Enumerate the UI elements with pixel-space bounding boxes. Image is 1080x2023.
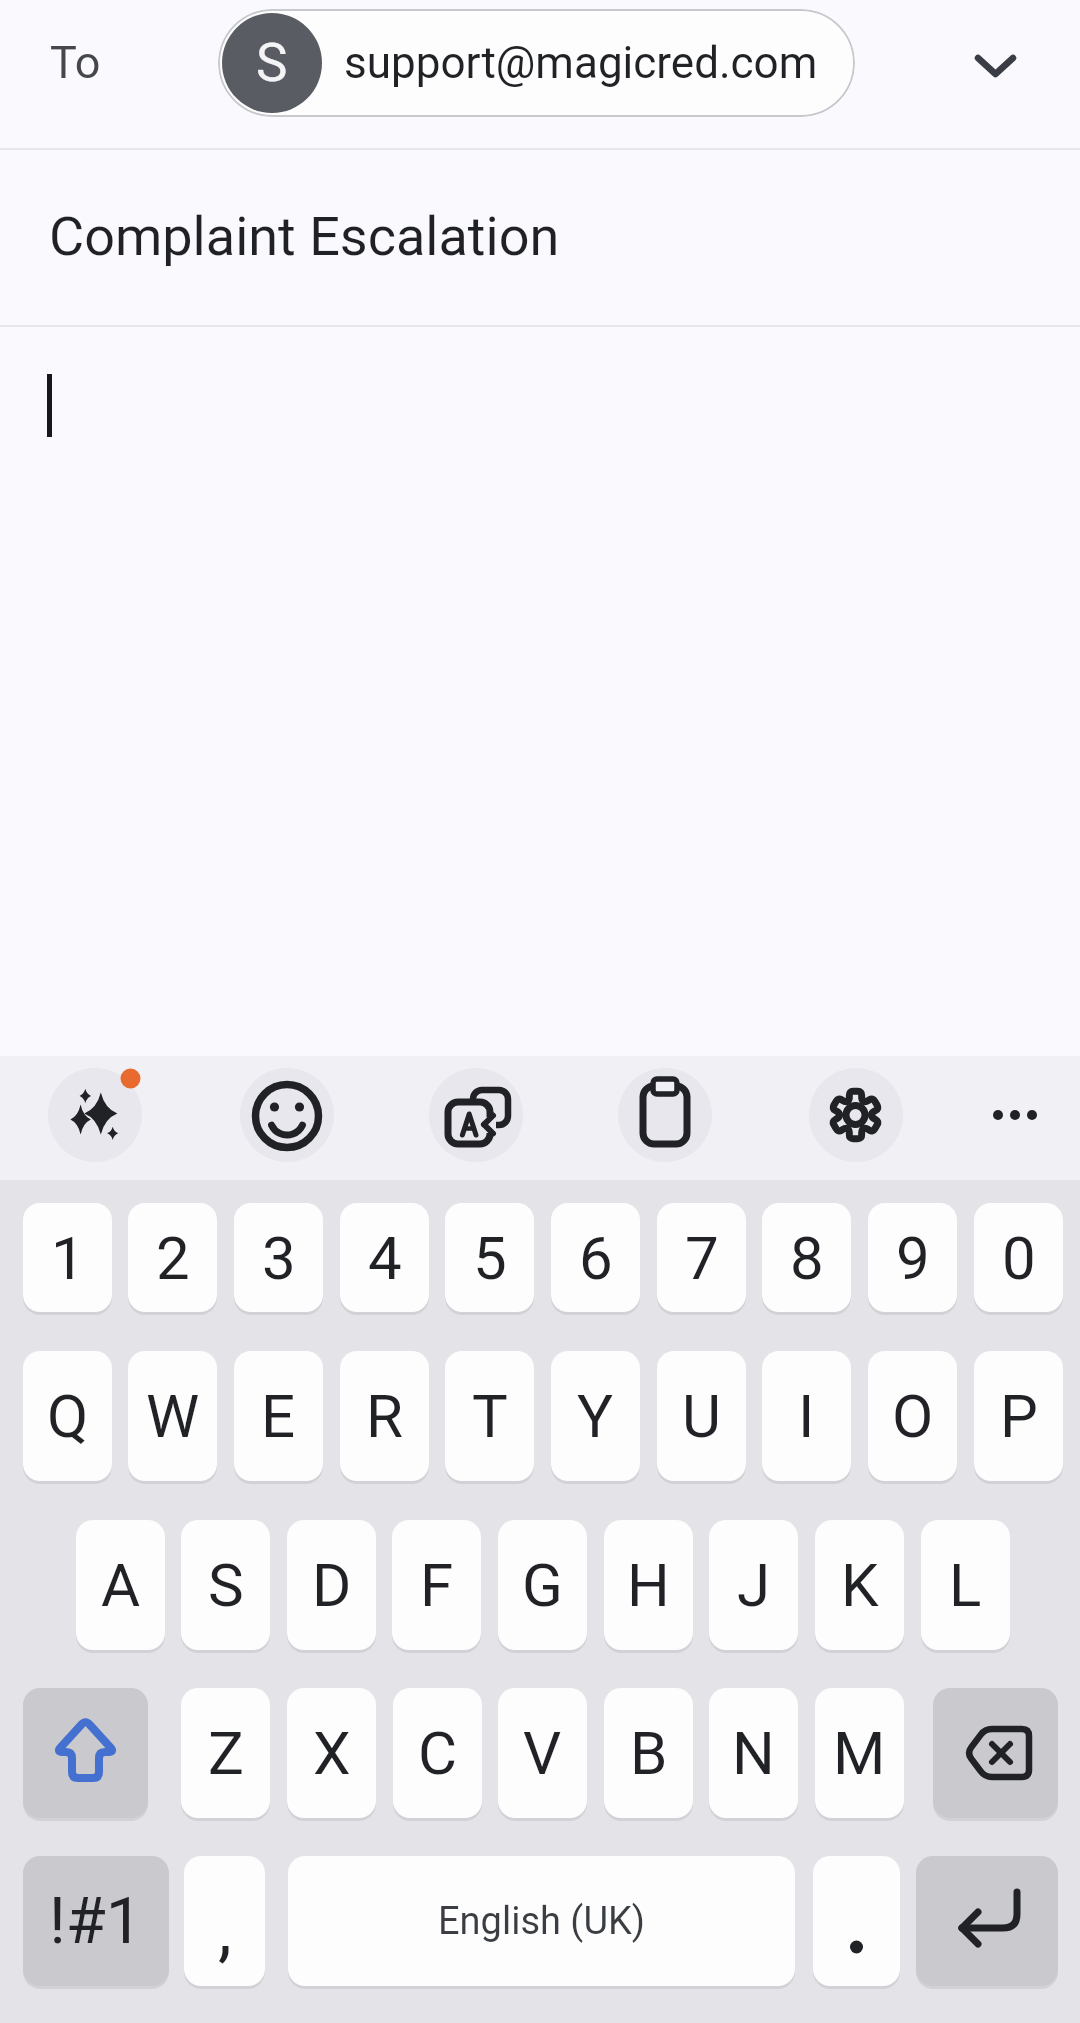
button[interactable]: B — [604, 1688, 693, 1818]
staticText: M — [833, 1718, 886, 1788]
button[interactable]: H — [604, 1520, 693, 1650]
button[interactable]: C — [393, 1688, 482, 1818]
staticText: B — [630, 1718, 668, 1788]
staticText: N — [732, 1718, 775, 1788]
staticText: To — [50, 36, 101, 89]
staticText: Q — [47, 1381, 89, 1451]
button[interactable]: Q — [23, 1351, 112, 1481]
button[interactable] — [809, 1068, 903, 1162]
button[interactable]: !#1 — [23, 1856, 169, 1986]
staticText: P — [1000, 1381, 1038, 1451]
button[interactable]: S — [181, 1520, 270, 1650]
staticText: O — [892, 1381, 934, 1451]
button[interactable]: 8 — [762, 1203, 851, 1312]
button[interactable]: English (UK) — [288, 1856, 795, 1986]
staticText: U — [682, 1381, 721, 1451]
staticText: 1 — [51, 1223, 85, 1293]
staticText: Complaint Escalation — [49, 205, 560, 268]
button[interactable] — [813, 1856, 900, 1986]
staticText: W — [146, 1381, 200, 1451]
staticText: D — [312, 1550, 352, 1620]
button[interactable]: K — [815, 1520, 904, 1650]
button[interactable]: M — [815, 1688, 904, 1818]
button[interactable]: G — [498, 1520, 587, 1650]
staticText: 9 — [896, 1223, 930, 1293]
staticText: Z — [208, 1718, 244, 1788]
button[interactable] — [429, 1068, 523, 1162]
button[interactable]: Y — [551, 1351, 640, 1481]
staticText: , — [218, 1889, 232, 1971]
button[interactable]: 9 — [868, 1203, 957, 1312]
staticText: support@magicred.com — [344, 37, 818, 89]
button[interactable] — [618, 1068, 712, 1162]
button[interactable]: D — [287, 1520, 376, 1650]
staticText: F — [420, 1550, 454, 1620]
staticText: J — [737, 1550, 771, 1620]
button[interactable]: U — [657, 1351, 746, 1481]
button[interactable]: R — [340, 1351, 429, 1481]
button[interactable] — [48, 1068, 142, 1162]
button[interactable] — [933, 1688, 1058, 1818]
button[interactable]: Z — [181, 1688, 270, 1818]
staticText: 3 — [262, 1223, 296, 1293]
button[interactable]: , — [184, 1856, 265, 1986]
button[interactable]: 4 — [340, 1203, 429, 1312]
button[interactable]: T — [445, 1351, 534, 1481]
staticText: 8 — [790, 1223, 824, 1293]
button[interactable]: L — [921, 1520, 1010, 1650]
staticText: !#1 — [49, 1883, 143, 1959]
staticText: 2 — [156, 1223, 190, 1293]
button[interactable]: 0 — [974, 1203, 1063, 1312]
button[interactable]: W — [128, 1351, 217, 1481]
button[interactable]: 1 — [23, 1203, 112, 1312]
staticText: Y — [577, 1381, 614, 1451]
staticText: C — [418, 1718, 458, 1788]
staticText: 7 — [685, 1223, 719, 1293]
button[interactable]: E — [234, 1351, 323, 1481]
button[interactable] — [975, 1091, 1055, 1141]
button[interactable] — [23, 1688, 148, 1818]
button[interactable]: 5 — [445, 1203, 534, 1312]
staticText: L — [949, 1550, 982, 1620]
staticText: H — [627, 1550, 670, 1620]
staticText: G — [522, 1550, 563, 1620]
staticText: T — [472, 1381, 508, 1451]
button[interactable]: 3 — [234, 1203, 323, 1312]
staticText: 0 — [1002, 1223, 1036, 1293]
staticText: K — [841, 1550, 879, 1620]
button[interactable]: F — [392, 1520, 481, 1650]
button[interactable]: 2 — [128, 1203, 217, 1312]
staticText: 5 — [473, 1223, 507, 1293]
button[interactable]: I — [762, 1351, 851, 1481]
staticText: X — [313, 1718, 351, 1788]
button[interactable]: O — [868, 1351, 957, 1481]
staticText: R — [366, 1381, 403, 1451]
staticText: S — [256, 32, 288, 94]
staticText: S — [208, 1550, 244, 1620]
staticText: I — [798, 1381, 815, 1451]
button[interactable] — [960, 38, 1030, 94]
button[interactable]: J — [709, 1520, 798, 1650]
button[interactable]: 6 — [551, 1203, 640, 1312]
staticText: English (UK) — [438, 1899, 646, 1944]
staticText: 4 — [368, 1223, 402, 1293]
staticText: 6 — [579, 1223, 613, 1293]
staticText: A — [101, 1550, 141, 1620]
staticText: V — [523, 1718, 562, 1788]
button[interactable]: 7 — [657, 1203, 746, 1312]
button[interactable]: P — [974, 1351, 1063, 1481]
staticText: E — [261, 1381, 296, 1451]
button[interactable]: N — [709, 1688, 798, 1818]
button[interactable]: A — [76, 1520, 165, 1650]
button[interactable]: S — [218, 9, 855, 117]
button[interactable]: V — [498, 1688, 587, 1818]
button[interactable]: X — [287, 1688, 376, 1818]
button[interactable] — [916, 1856, 1058, 1986]
button[interactable] — [240, 1068, 334, 1162]
